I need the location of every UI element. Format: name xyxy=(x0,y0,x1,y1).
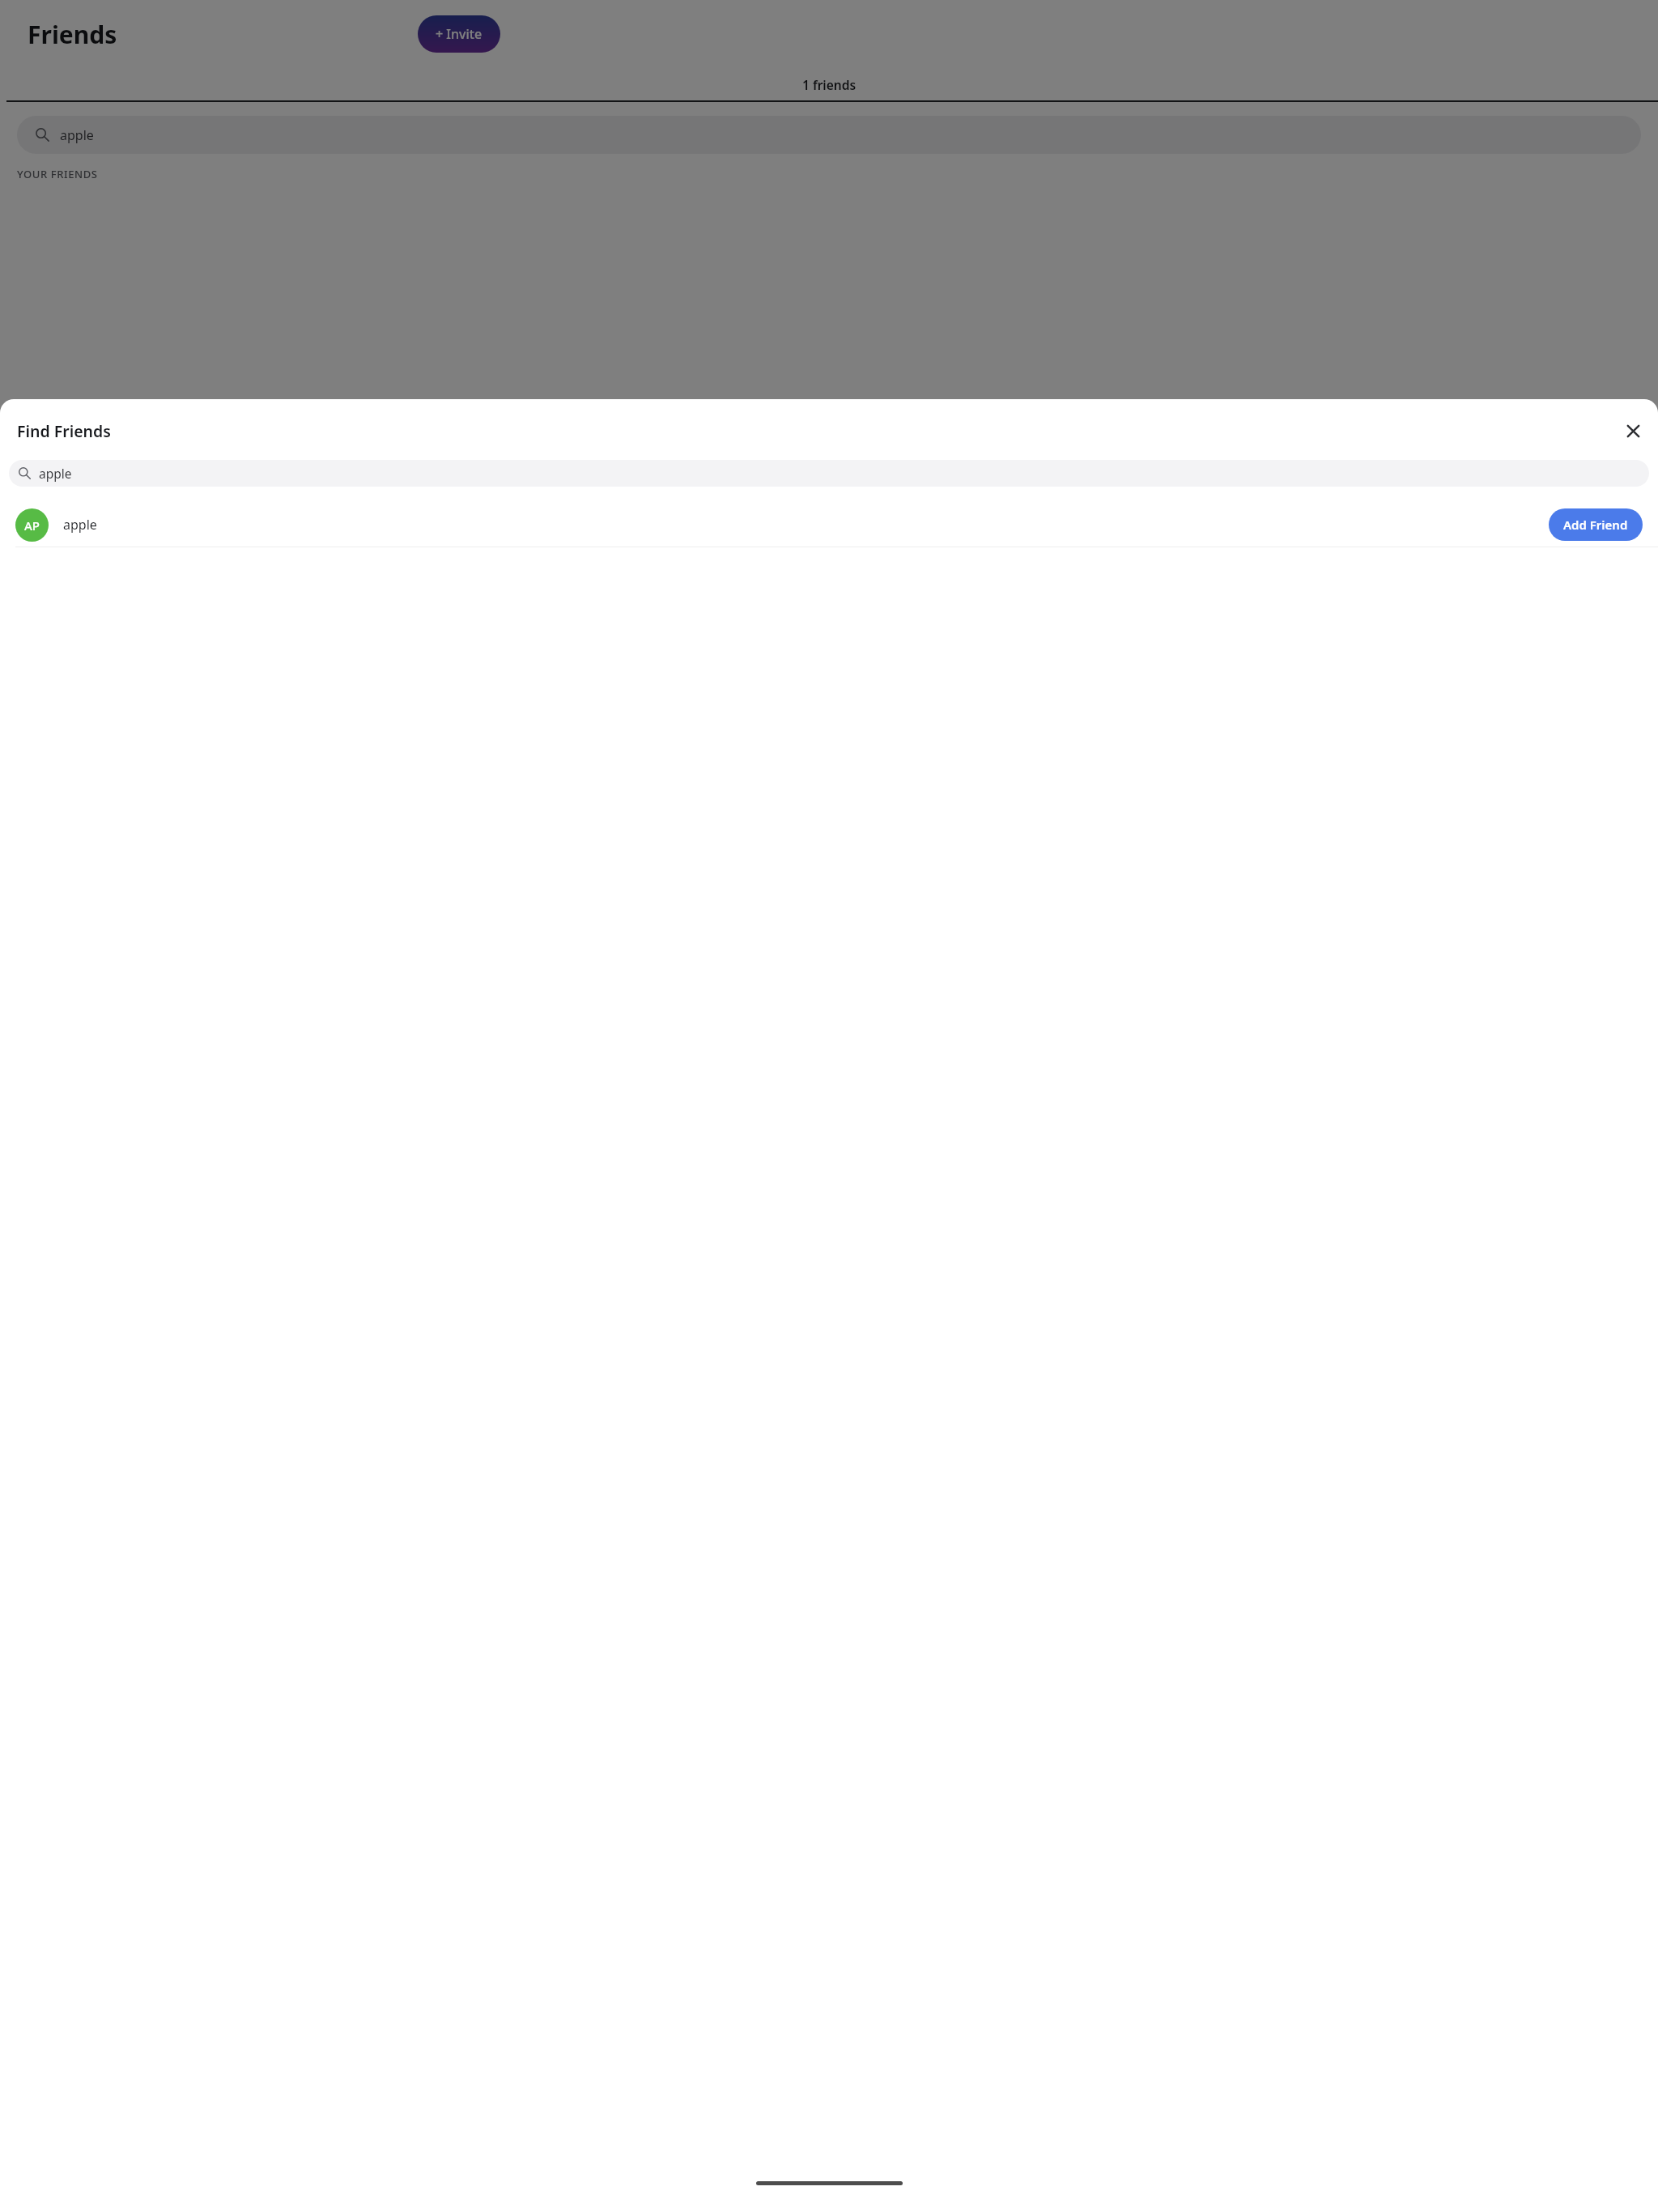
staticText: Find Friends xyxy=(17,420,111,442)
staticText: + Invite xyxy=(436,25,483,43)
button[interactable]: apple xyxy=(17,116,1641,154)
staticText: Friends xyxy=(28,18,117,51)
button[interactable]: apple xyxy=(9,460,1649,487)
button[interactable]: AP xyxy=(0,503,1658,547)
staticText: 1 friends xyxy=(802,76,857,93)
button[interactable]: 1 friends xyxy=(0,68,1658,100)
staticText: apple xyxy=(39,465,72,482)
staticText: apple xyxy=(63,516,1549,534)
button[interactable]: Add Friend xyxy=(1549,508,1643,541)
staticText: Add Friend xyxy=(1563,517,1628,533)
staticText: AP xyxy=(24,517,40,534)
staticText: YOUR FRIENDS xyxy=(17,167,98,181)
button[interactable]: Close xyxy=(1617,415,1649,447)
staticText: apple xyxy=(60,126,94,144)
button[interactable]: + Invite xyxy=(418,15,500,53)
